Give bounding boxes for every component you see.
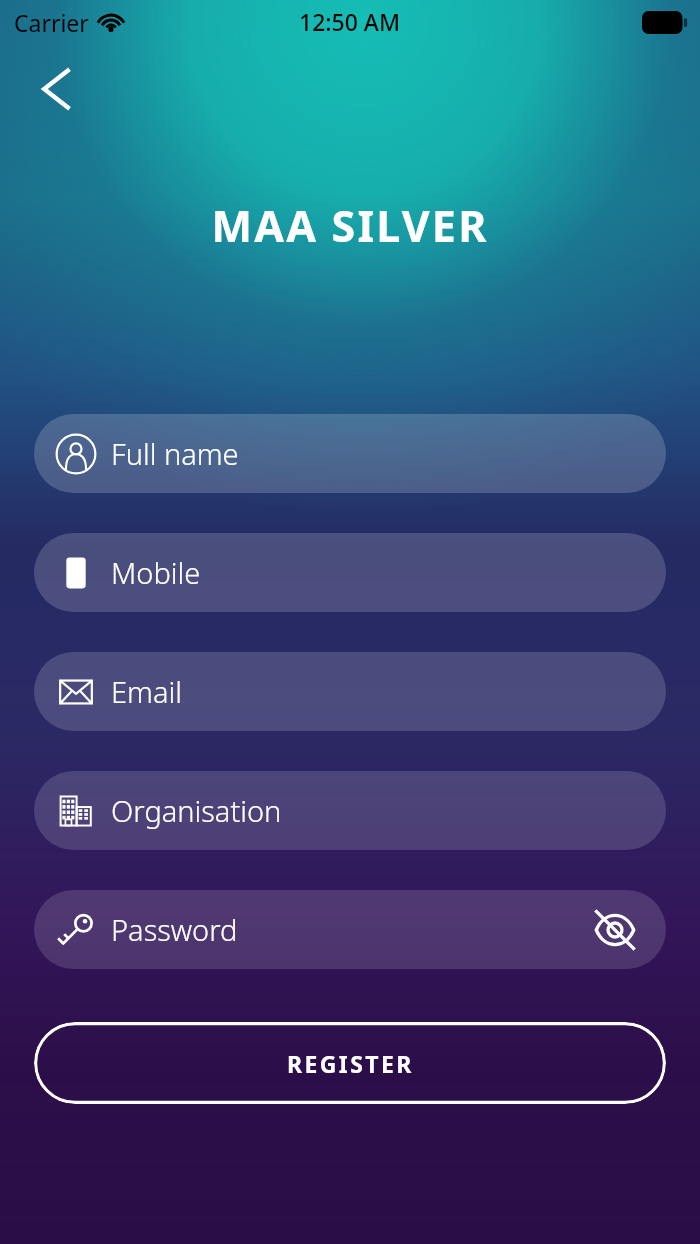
staticText: Mobile — [111, 553, 201, 592]
staticText: Organisation — [111, 791, 282, 830]
button[interactable]: REGISTER — [34, 1022, 666, 1104]
staticText: REGISTER — [287, 1048, 414, 1079]
button[interactable]: Show password — [588, 903, 642, 957]
button[interactable]: Email — [34, 652, 666, 731]
button[interactable]: Back — [22, 58, 88, 124]
staticText: Full name — [111, 434, 239, 473]
staticText: 12:50 AM — [299, 6, 401, 37]
staticText: Email — [111, 672, 182, 711]
staticText: Password — [111, 910, 238, 949]
staticText: MAA SILVER — [0, 196, 700, 255]
button[interactable]: Mobile — [34, 533, 666, 612]
staticText: Carrier — [14, 7, 89, 38]
button[interactable]: Password — [34, 890, 666, 969]
button[interactable]: Full name — [34, 414, 666, 493]
button[interactable]: Organisation — [34, 771, 666, 850]
